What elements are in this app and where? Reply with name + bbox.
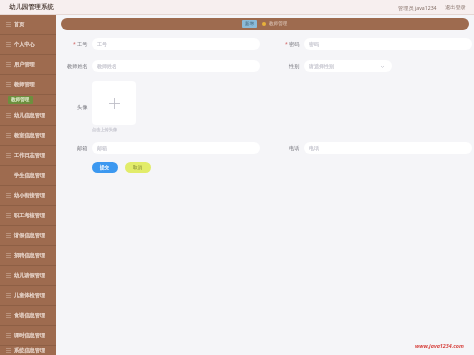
staticText: 教师管理 — [11, 97, 30, 103]
staticText: 用户管理 — [14, 61, 35, 68]
button[interactable]: 教师姓名 — [92, 60, 260, 72]
staticText: 新增 — [245, 21, 254, 27]
button[interactable]: 学生信息管理 — [0, 166, 56, 185]
button[interactable]: 电话 — [304, 142, 472, 154]
button[interactable]: 教师管理 — [0, 75, 56, 94]
button[interactable]: 取消 — [125, 162, 151, 173]
staticText: 招聘信息管理 — [14, 252, 46, 259]
button[interactable]: 新增 — [242, 20, 257, 28]
staticText: 教师管理 — [14, 81, 35, 88]
staticText: 请假信息管理 — [14, 232, 46, 239]
staticText: 点击上传头像 — [92, 127, 118, 132]
staticText: 管理员 java1234 — [398, 4, 437, 11]
button[interactable]: 邮箱 — [92, 142, 260, 154]
staticText: 邮箱 — [97, 145, 107, 151]
staticText: 教师姓名 — [97, 63, 117, 69]
button[interactable]: 食谱信息管理 — [0, 306, 56, 325]
staticText: 教室信息管理 — [14, 132, 46, 139]
staticText: 电话 — [289, 145, 300, 152]
button[interactable]: 提交 — [92, 162, 118, 173]
staticText: 提交 — [100, 165, 110, 171]
button[interactable]: 职工考核管理 — [0, 206, 56, 225]
staticText: 请选择性别 — [309, 63, 334, 69]
button[interactable]: 请假信息管理 — [0, 226, 56, 245]
button[interactable]: 个人中心 — [0, 35, 56, 54]
staticText: 学生信息管理 — [14, 172, 46, 179]
button[interactable]: 幼儿请假管理 — [0, 266, 56, 285]
staticText: 课时信息管理 — [14, 332, 46, 339]
staticText: 电话 — [309, 145, 319, 151]
button[interactable]: 退出登录 — [445, 4, 466, 11]
button[interactable]: 上传头像 — [92, 81, 136, 125]
staticText: 密码 — [309, 41, 319, 47]
button[interactable]: 课时信息管理 — [0, 326, 56, 345]
staticText: 工作日志管理 — [14, 152, 46, 159]
staticText: 食谱信息管理 — [14, 312, 46, 319]
button[interactable]: 请选择性别 — [304, 60, 392, 72]
staticText: 首页 — [14, 21, 25, 28]
staticText: * — [73, 41, 76, 48]
staticText: 教师姓名 — [67, 63, 88, 70]
button[interactable]: 系统信息管理 — [0, 346, 56, 355]
staticText: 邮箱 — [77, 145, 88, 152]
button[interactable]: 招聘信息管理 — [0, 246, 56, 265]
button[interactable]: 密码 — [304, 38, 472, 50]
staticText: 密码 — [289, 41, 300, 48]
button[interactable]: 教室信息管理 — [0, 126, 56, 145]
button[interactable]: 工号 — [92, 38, 260, 50]
staticText: 性别 — [289, 63, 300, 70]
button[interactable]: 用户管理 — [0, 55, 56, 74]
staticText: 退出登录 — [445, 4, 466, 11]
staticText: 系统信息管理 — [14, 347, 46, 354]
button[interactable]: 教师管理 — [269, 21, 288, 27]
staticText: 工号 — [77, 41, 88, 48]
staticText: 幼儿园管理系统 — [9, 3, 54, 11]
staticText: www.java1234.com — [415, 342, 464, 349]
staticText: 教师管理 — [269, 21, 288, 27]
button[interactable]: 首页 — [0, 15, 56, 34]
button[interactable]: 幼小衔接管理 — [0, 186, 56, 205]
staticText: 工号 — [97, 41, 107, 47]
staticText: 幼小衔接管理 — [14, 192, 46, 199]
staticText: 个人中心 — [14, 41, 35, 48]
staticText: * — [285, 41, 288, 48]
button[interactable]: 儿童体检管理 — [0, 286, 56, 305]
button[interactable]: 教师管理 — [8, 96, 33, 104]
staticText: 幼儿信息管理 — [14, 112, 46, 119]
staticText: 儿童体检管理 — [14, 292, 46, 299]
staticText: 头像 — [77, 104, 88, 111]
button[interactable]: 工作日志管理 — [0, 146, 56, 165]
staticText: 取消 — [133, 165, 143, 171]
button[interactable]: 幼儿信息管理 — [0, 106, 56, 125]
staticText: 职工考核管理 — [14, 212, 46, 219]
staticText: 幼儿请假管理 — [14, 272, 46, 279]
